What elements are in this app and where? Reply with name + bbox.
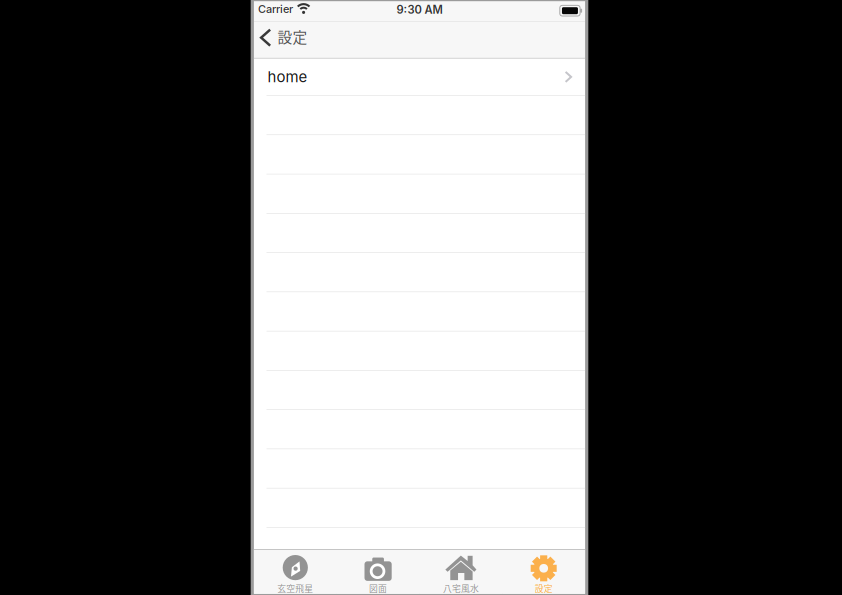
button[interactable]: 設定	[254, 21, 318, 58]
staticText: 設定	[278, 26, 308, 47]
button[interactable]: 図面	[337, 549, 419, 594]
staticText: 9:30 AM	[396, 3, 442, 16]
staticText: Carrier	[258, 2, 293, 16]
staticText: 図面	[369, 582, 387, 595]
button[interactable]: 設定	[502, 549, 585, 594]
button[interactable]: 八宅風水	[419, 549, 502, 594]
button[interactable]: home	[254, 58, 585, 95]
button[interactable]: 玄空飛星	[254, 549, 337, 594]
staticText: home	[267, 68, 307, 86]
staticText: 設定	[535, 582, 553, 595]
staticText: 八宅風水	[443, 582, 479, 595]
staticText: 玄空飛星	[277, 582, 313, 595]
